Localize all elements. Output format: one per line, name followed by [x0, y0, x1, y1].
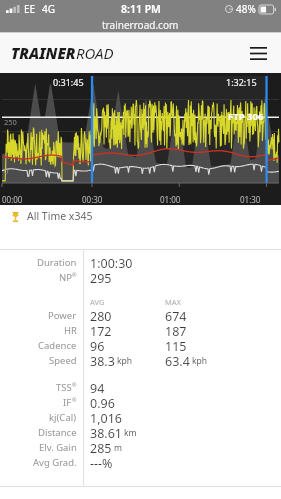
- button[interactable]: Distance: [0, 425, 281, 440]
- button[interactable]: Menu: [245, 40, 271, 66]
- staticText: Cadence: [38, 339, 77, 352]
- staticText: 48%: [236, 2, 256, 16]
- button[interactable]: Workout power chart: [0, 73, 281, 205]
- button[interactable]: Duration: [0, 255, 281, 270]
- staticText: Duration: [37, 256, 77, 269]
- staticText: All Time x345: [27, 209, 93, 223]
- staticText: TRAINER: [11, 43, 76, 63]
- staticText: m: [114, 442, 122, 454]
- staticText: 01:30: [240, 194, 261, 205]
- button[interactable]: Elv. Gain: [0, 440, 281, 455]
- staticText: kj(Cal): [49, 411, 77, 424]
- staticText: Elv. Gain: [39, 441, 77, 454]
- staticText: 674: [165, 308, 187, 323]
- staticText: NP: [59, 271, 72, 284]
- staticText: HR: [64, 324, 77, 337]
- staticText: FTP 306: [228, 110, 264, 123]
- button[interactable]: HR: [0, 323, 281, 338]
- staticText: 1:32:15: [226, 76, 257, 88]
- staticText: 00:00: [2, 194, 23, 205]
- staticText: TSS: [56, 381, 72, 394]
- staticText: Distance: [38, 426, 77, 439]
- staticText: ---%: [90, 455, 113, 470]
- staticText: kph: [192, 355, 208, 367]
- staticText: 38.61: [90, 425, 122, 440]
- staticText: EE: [24, 2, 36, 16]
- button[interactable]: trainerroad.com: [0, 17, 281, 32]
- staticText: ®: [72, 396, 77, 403]
- staticText: ROAD: [76, 43, 114, 63]
- staticText: MAX: [165, 297, 181, 307]
- staticText: 1,016: [90, 410, 122, 425]
- staticText: 250: [4, 117, 17, 127]
- button[interactable]: Speed: [0, 353, 281, 368]
- staticText: 285: [90, 440, 112, 455]
- button[interactable]: Avg Grad.: [0, 455, 281, 470]
- staticText: 295: [90, 270, 112, 285]
- staticText: 8:11 PM: [121, 2, 161, 16]
- staticText: Power: [48, 309, 77, 322]
- staticText: kph: [117, 355, 133, 367]
- staticText: km: [124, 427, 137, 439]
- staticText: Speed: [49, 354, 77, 367]
- staticText: 187: [165, 323, 187, 338]
- staticText: 280: [90, 308, 112, 323]
- button[interactable]: TSS: [0, 380, 281, 395]
- button[interactable]: Power: [0, 308, 281, 323]
- staticText: 0.96: [90, 395, 115, 410]
- staticText: 0: [4, 166, 9, 176]
- staticText: 115: [165, 338, 187, 353]
- staticText: AVG: [90, 297, 105, 307]
- staticText: trainerroad.com: [102, 18, 179, 32]
- button[interactable]: NP: [0, 270, 281, 285]
- staticText: 96: [90, 338, 105, 353]
- staticText: ®: [72, 381, 77, 388]
- staticText: IF: [63, 396, 72, 409]
- staticText: 4G: [42, 2, 55, 16]
- staticText: 94: [90, 380, 105, 395]
- button[interactable]: All Time x345: [0, 205, 281, 227]
- staticText: 00:30: [82, 194, 103, 205]
- button[interactable]: Cadence: [0, 338, 281, 353]
- staticText: 172: [90, 323, 112, 338]
- staticText: Avg Grad.: [33, 456, 77, 469]
- staticText: 63.4: [165, 353, 190, 368]
- button[interactable]: IF: [0, 395, 281, 410]
- staticText: 38.3: [90, 353, 115, 368]
- button[interactable]: TRAINER: [11, 43, 114, 63]
- staticText: ®: [72, 271, 77, 278]
- button[interactable]: kj(Cal): [0, 410, 281, 425]
- staticText: 0:31:45: [53, 76, 84, 88]
- staticText: 1:00:30: [90, 255, 133, 270]
- staticText: 01:00: [160, 194, 181, 205]
